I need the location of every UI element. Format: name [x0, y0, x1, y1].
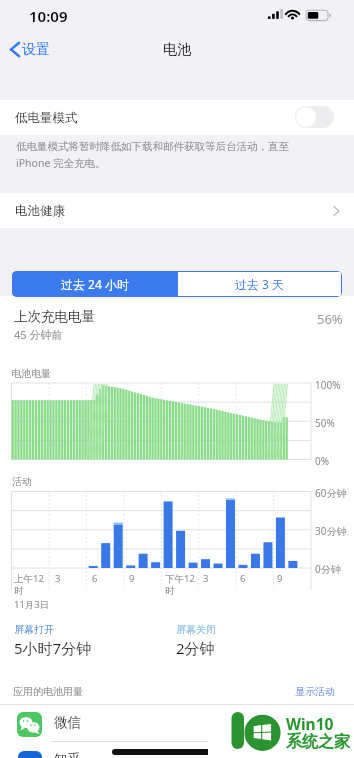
staticText: 9 [277, 572, 283, 585]
staticText: 活动 [12, 475, 32, 488]
button[interactable]: 电池健康 [0, 193, 354, 228]
staticText: 9 [129, 572, 135, 585]
staticText: 30分钟 [315, 524, 347, 538]
staticText: 上午12 时 [14, 572, 44, 597]
staticText: Win10 [286, 713, 334, 734]
staticText: 3 [55, 572, 61, 585]
button[interactable]: 设置 [5, 36, 63, 62]
staticText: 6 [240, 572, 246, 585]
staticText: 过去 24 小时 [61, 276, 129, 292]
staticText: 过去 3 天 [235, 276, 285, 292]
staticText: 11月3日 [14, 598, 50, 611]
staticText: 100% [315, 378, 341, 392]
staticText: 下午12 时 [165, 572, 195, 597]
staticText: 屏幕打开 [14, 623, 54, 636]
staticText: 0% [315, 454, 330, 468]
staticText: 系统之家 [286, 732, 350, 752]
staticText: 电池健康 [15, 203, 65, 219]
staticText: 上次充电电量 [14, 308, 95, 325]
button[interactable]: 知乎 [0, 742, 354, 758]
staticText: 60分钟 [315, 486, 347, 500]
staticText: 2分钟 [176, 638, 215, 658]
staticText: 电池电量 [11, 367, 51, 380]
button[interactable]: 低电量模式 [0, 100, 354, 135]
button[interactable]: 显示活动 [293, 683, 337, 700]
staticText: 微信 [54, 714, 81, 731]
staticText: 56% [317, 310, 343, 328]
button[interactable]: 微信 [0, 704, 354, 741]
staticText: 知乎 [54, 751, 81, 758]
button[interactable]: 低电量模式 [295, 106, 334, 128]
staticText: 低电量模式将暂时降低如下载和邮件获取等后台活动，直至 iPhone 完全充电。 [16, 140, 289, 170]
staticText: 10:09 [29, 6, 68, 26]
staticText: 应用的电池用量 [13, 685, 83, 698]
staticText: 低电量模式 [15, 110, 78, 126]
staticText: 5小时7分钟 [14, 638, 92, 658]
staticText: 0分钟 [315, 562, 341, 576]
staticText: 3 [203, 572, 209, 585]
staticText: 6 [92, 572, 98, 585]
staticText: 50% [315, 416, 335, 430]
button[interactable]: 过去 3 天 [178, 272, 341, 296]
staticText: 屏幕关闭 [176, 623, 216, 636]
staticText: 45 分钟前 [14, 327, 63, 342]
staticText: 显示活动 [295, 685, 335, 698]
staticText: 设置 [22, 41, 50, 59]
button[interactable]: 过去 24 小时 [12, 271, 177, 297]
staticText: 电池 [163, 41, 191, 59]
